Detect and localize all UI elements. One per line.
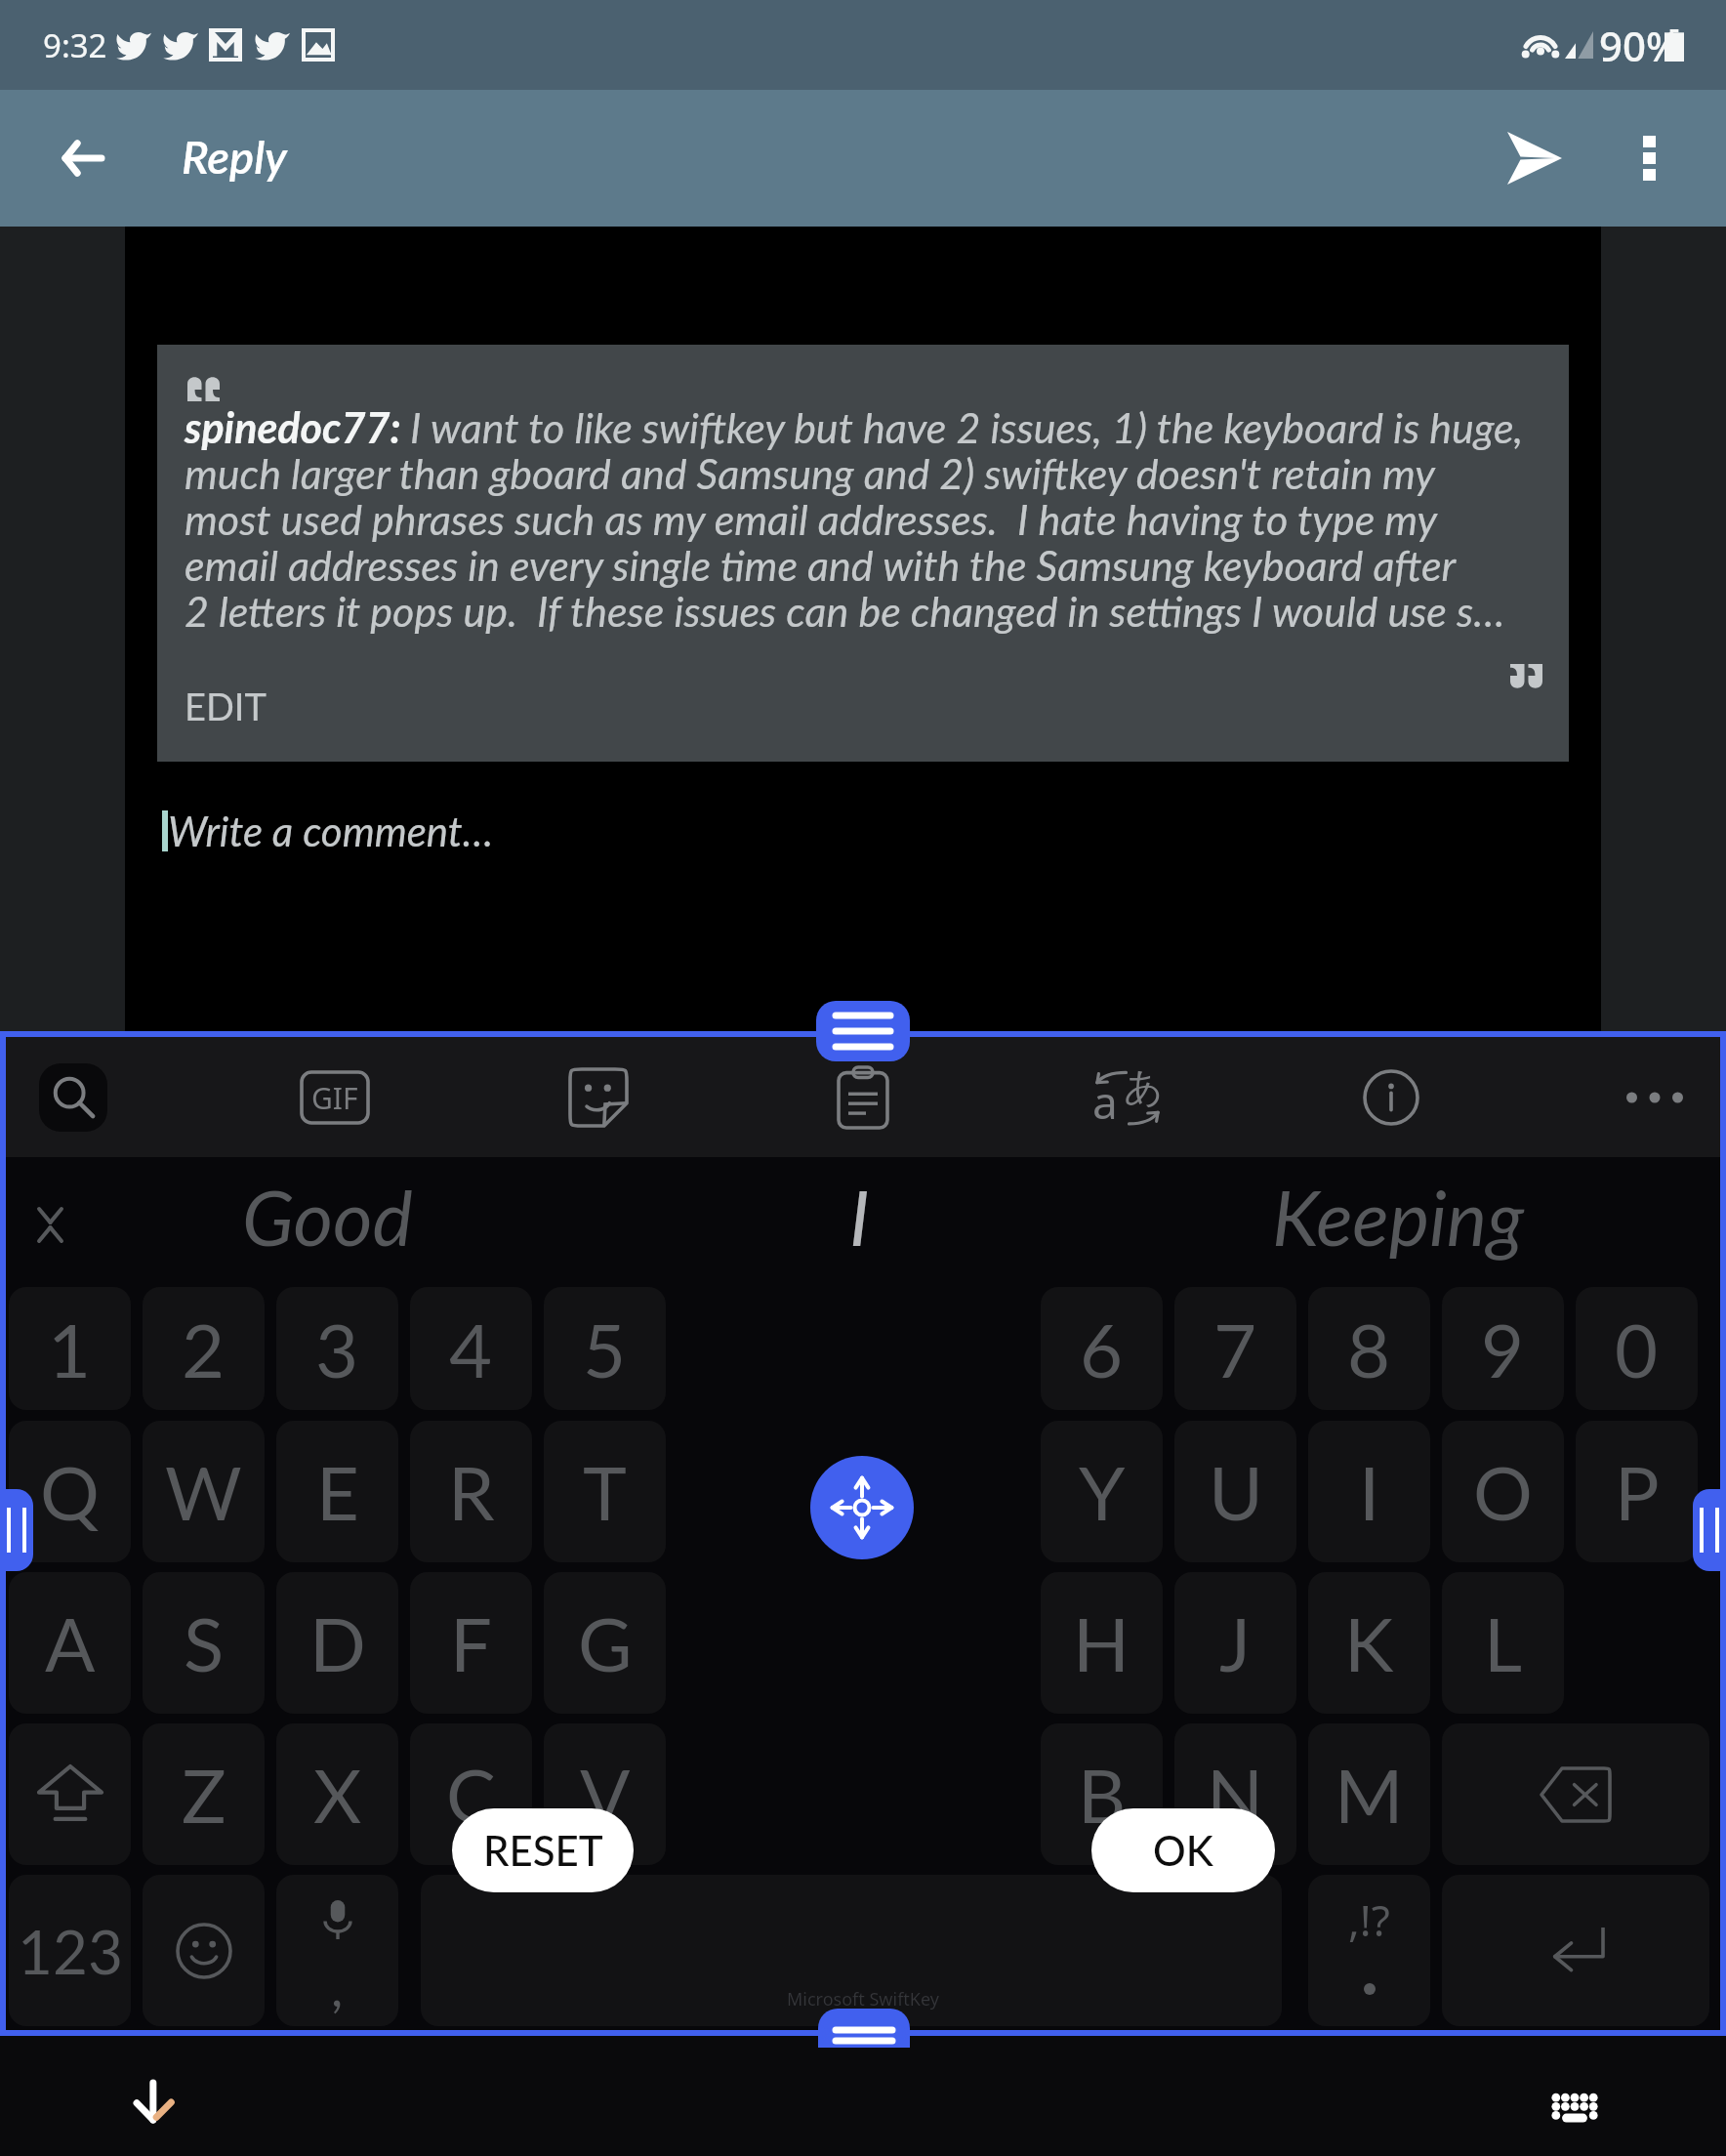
staticText: Q xyxy=(40,1447,100,1536)
button[interactable]: G xyxy=(544,1572,666,1714)
button[interactable]: Back xyxy=(23,90,141,227)
button[interactable]: Shift xyxy=(9,1723,131,1865)
button[interactable]: Enter xyxy=(1442,1875,1709,2026)
button[interactable]: Q xyxy=(9,1421,131,1562)
button[interactable]: B xyxy=(1041,1723,1163,1865)
button[interactable]: 123 xyxy=(9,1875,131,2026)
staticText: M xyxy=(1335,1750,1404,1839)
button[interactable]: 3 xyxy=(276,1287,398,1410)
button[interactable]: GIF xyxy=(286,1049,384,1146)
staticText: H xyxy=(1073,1598,1130,1687)
button[interactable]: H xyxy=(1041,1572,1163,1714)
button[interactable]: T xyxy=(544,1421,666,1562)
button[interactable]: More xyxy=(1606,1049,1704,1146)
staticText: , xyxy=(331,1955,344,2018)
staticText: L xyxy=(1484,1598,1523,1687)
staticText: GIF xyxy=(311,1078,358,1118)
staticText: 6 xyxy=(1080,1305,1124,1393)
button[interactable]: Translate xyxy=(1079,1049,1176,1146)
button[interactable]: 6 xyxy=(1041,1287,1163,1410)
button[interactable]: 2 xyxy=(143,1287,265,1410)
staticText: 2 letters it pops up. If these issues ca… xyxy=(185,586,1505,637)
button[interactable]: 5 xyxy=(544,1287,666,1410)
staticText: 123 xyxy=(18,1915,123,1987)
staticText: most used phrases such as my email addre… xyxy=(185,494,1438,545)
button[interactable]: I xyxy=(713,1151,1006,1281)
staticText: S xyxy=(184,1598,225,1687)
button[interactable]: A xyxy=(9,1572,131,1714)
button[interactable]: 8 xyxy=(1308,1287,1430,1410)
button[interactable]: Stickers xyxy=(550,1049,647,1146)
button[interactable]: Emoji xyxy=(143,1875,265,2026)
button[interactable]: Punctuation xyxy=(1308,1875,1430,2026)
button[interactable]: Clipboard xyxy=(814,1049,912,1146)
button[interactable]: Voice input xyxy=(276,1875,398,2026)
button[interactable]: 1 xyxy=(9,1287,131,1410)
button[interactable]: Space xyxy=(421,1875,1282,2026)
button[interactable]: 7 xyxy=(1174,1287,1296,1410)
button[interactable]: Info xyxy=(1342,1049,1440,1146)
button[interactable]: Resize left xyxy=(0,1489,33,1571)
button[interactable]: C xyxy=(410,1723,532,1865)
staticText: 1 xyxy=(48,1305,92,1393)
staticText: U xyxy=(1209,1447,1263,1536)
staticText: P xyxy=(1615,1447,1660,1536)
button[interactable]: I xyxy=(1308,1421,1430,1562)
button[interactable]: Y xyxy=(1041,1421,1163,1562)
staticText: Reply xyxy=(182,129,287,184)
staticText: email addresses in every single time and… xyxy=(185,540,1457,591)
staticText: much larger than gboard and Samsung and … xyxy=(185,448,1435,499)
staticText: Good xyxy=(242,1171,413,1263)
button[interactable]: More options xyxy=(1595,90,1703,227)
staticText: I xyxy=(849,1171,870,1263)
button[interactable]: Backspace xyxy=(1442,1723,1709,1865)
staticText: O xyxy=(1473,1447,1533,1536)
button[interactable]: P xyxy=(1576,1421,1698,1562)
staticText: Write a comment… xyxy=(168,807,494,855)
staticText: J xyxy=(1219,1598,1252,1687)
button[interactable]: X xyxy=(276,1723,398,1865)
button[interactable]: M xyxy=(1308,1723,1430,1865)
staticText: ,!? xyxy=(1348,1890,1390,1949)
staticText: EDIT xyxy=(185,684,267,728)
button[interactable]: Change keyboard xyxy=(1526,2056,1623,2154)
button[interactable]: Good xyxy=(107,1151,547,1281)
button[interactable]: Resize keyboard xyxy=(816,1001,910,1061)
button[interactable]: O xyxy=(1442,1421,1564,1562)
button[interactable]: Search xyxy=(39,1063,107,1132)
button[interactable]: S xyxy=(143,1572,265,1714)
button[interactable]: Hide keyboard xyxy=(103,2053,201,2151)
button[interactable]: F xyxy=(410,1572,532,1714)
button[interactable]: Cursor control xyxy=(810,1456,914,1559)
button[interactable]: V xyxy=(544,1723,666,1865)
button[interactable]: 9 xyxy=(1442,1287,1564,1410)
button[interactable]: 0 xyxy=(1576,1287,1698,1410)
staticText: 3 xyxy=(315,1305,359,1393)
staticText: 7 xyxy=(1213,1305,1257,1393)
button[interactable]: Keeping xyxy=(1154,1151,1642,1281)
button[interactable]: OK xyxy=(1091,1808,1275,1892)
button[interactable]: Collapse predictions xyxy=(6,1181,94,1268)
button[interactable]: RESET xyxy=(452,1808,634,1892)
button[interactable]: K xyxy=(1308,1572,1430,1714)
button[interactable]: Resize keyboard bottom xyxy=(818,2009,910,2048)
button[interactable]: Resize right xyxy=(1693,1489,1726,1571)
button[interactable]: L xyxy=(1442,1572,1564,1714)
button[interactable]: N xyxy=(1174,1723,1296,1865)
staticText: spinedoc77: I want to like swiftkey but … xyxy=(185,402,1524,453)
button[interactable]: spinedoc77: I want to like swiftkey but … xyxy=(157,345,1569,762)
button[interactable]: U xyxy=(1174,1421,1296,1562)
button[interactable]: 4 xyxy=(410,1287,532,1410)
button[interactable]: J xyxy=(1174,1572,1296,1714)
staticText: RESET xyxy=(483,1826,603,1875)
button[interactable]: W xyxy=(143,1421,265,1562)
button[interactable]: Send xyxy=(1476,90,1593,227)
button[interactable]: E xyxy=(276,1421,398,1562)
staticText: 9:32 xyxy=(43,23,107,67)
staticText: あ xyxy=(1124,1062,1164,1111)
button[interactable]: D xyxy=(276,1572,398,1714)
staticText: a xyxy=(1092,1071,1118,1133)
button[interactable]: Z xyxy=(143,1723,265,1865)
staticText: E xyxy=(316,1447,359,1536)
button[interactable]: R xyxy=(410,1421,532,1562)
